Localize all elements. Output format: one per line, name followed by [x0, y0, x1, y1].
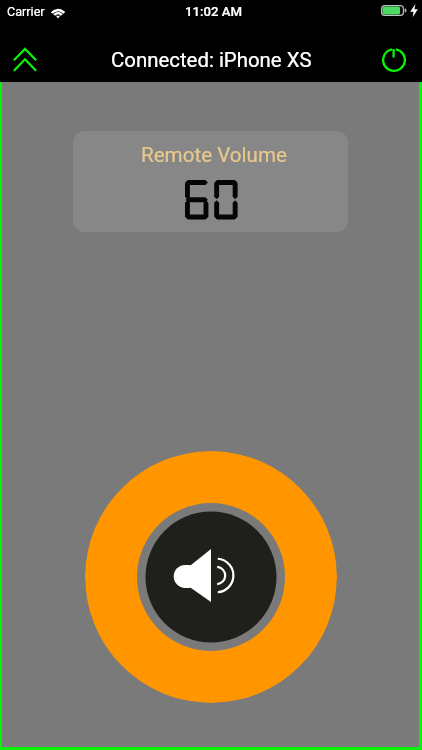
button[interactable]: Remote Volume — [73, 131, 348, 232]
button[interactable]: Power — [372, 38, 416, 82]
staticText: Carrier — [7, 4, 45, 19]
staticText: Connected: iPhone XS — [111, 48, 312, 72]
staticText: 11:02 AM — [185, 4, 243, 19]
button[interactable]: Collapse — [1, 36, 49, 84]
staticText: Remote Volume — [141, 143, 287, 167]
button[interactable]: Mute remote volume — [85, 451, 337, 703]
